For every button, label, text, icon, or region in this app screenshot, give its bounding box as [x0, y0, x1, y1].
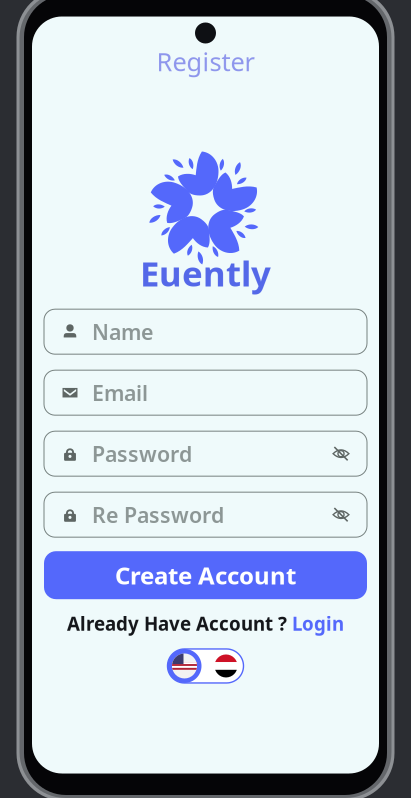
staticText: Create Account [115, 559, 296, 591]
button[interactable]: Language [167, 649, 243, 683]
staticText: Password [92, 439, 192, 468]
staticText: Email [92, 378, 148, 407]
staticText: Login [292, 611, 344, 636]
staticText: Already Have Account ? [67, 611, 287, 636]
button[interactable]: Create Account [44, 551, 367, 599]
staticText: Re Password [92, 500, 224, 529]
staticText: Register [156, 44, 254, 78]
staticText: Euently [140, 250, 271, 296]
button[interactable]: Show password [329, 503, 353, 527]
button[interactable]: Show password [329, 442, 353, 466]
button[interactable]: Login [292, 611, 344, 636]
staticText: نافذلي [174, 760, 237, 781]
staticText: Name [92, 317, 153, 346]
